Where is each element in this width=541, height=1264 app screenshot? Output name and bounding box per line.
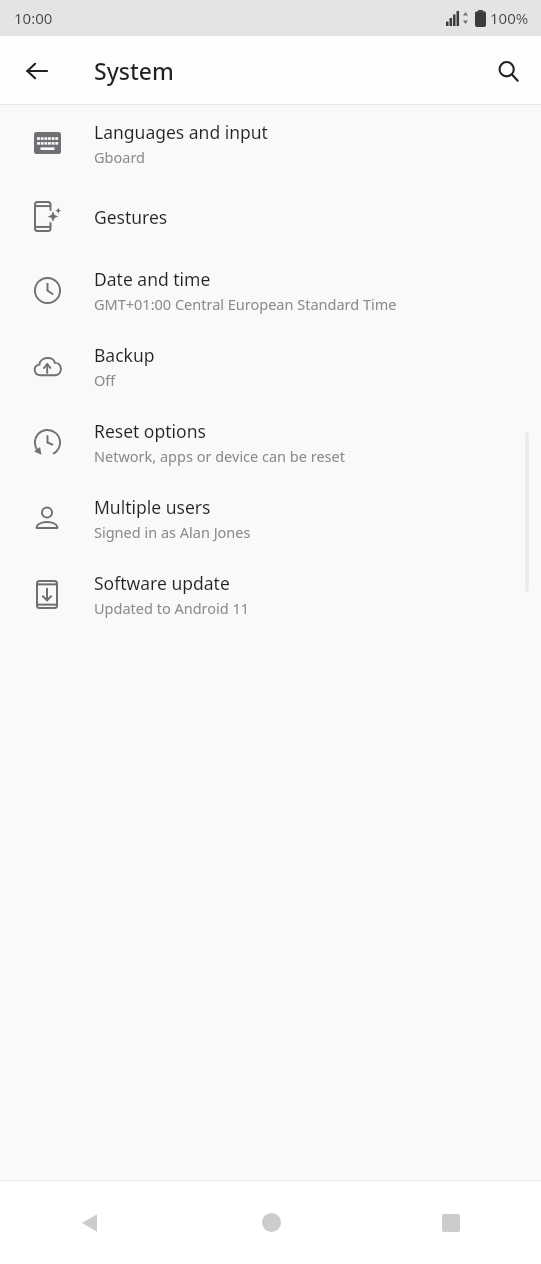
staticText: 10:00 (14, 8, 53, 28)
staticText: Off (94, 370, 116, 390)
staticText: GMT+01:00 Central European Standard Time (94, 294, 397, 314)
staticText: Network, apps or device can be reset (94, 446, 345, 466)
button[interactable]: Backup (0, 328, 541, 404)
button[interactable]: Reset options (0, 404, 541, 480)
button[interactable]: Date and time (0, 252, 541, 328)
staticText: 100% (490, 8, 529, 28)
staticText: Languages and input (94, 120, 268, 144)
staticText: Updated to Android 11 (94, 598, 250, 618)
button[interactable]: Home (181, 1181, 361, 1264)
staticText: Gboard (94, 147, 145, 167)
button[interactable]: Recents (361, 1181, 541, 1264)
staticText: Software update (94, 571, 230, 595)
button[interactable]: Search (485, 48, 531, 94)
button[interactable]: Languages and input (0, 105, 541, 181)
staticText: Date and time (94, 267, 211, 291)
button[interactable]: Software update (0, 556, 541, 632)
staticText: Multiple users (94, 495, 211, 519)
staticText: System (94, 55, 174, 86)
staticText: Signed in as Alan Jones (94, 522, 251, 542)
staticText: Gestures (94, 205, 168, 229)
staticText: Backup (94, 343, 155, 367)
button[interactable]: Gestures (0, 181, 541, 252)
button[interactable]: Multiple users (0, 480, 541, 556)
button[interactable]: Back (14, 48, 60, 94)
button[interactable]: Back (0, 1181, 181, 1264)
staticText: Reset options (94, 419, 206, 443)
